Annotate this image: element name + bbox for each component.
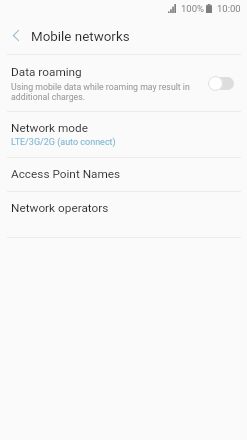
- staticText: Data roaming: [11, 65, 82, 79]
- button[interactable]: Access Point Names: [0, 158, 247, 191]
- button[interactable]: Network mode: [0, 112, 247, 157]
- staticText: Access Point Names: [11, 167, 121, 181]
- staticText: 100%: [181, 3, 204, 14]
- button[interactable]: Data roaming off: [208, 76, 233, 91]
- staticText: Network operators: [11, 201, 109, 215]
- staticText: LTE/3G/2G (auto connect): [11, 137, 116, 148]
- staticText: Mobile networks: [31, 29, 130, 45]
- button[interactable]: Network operators: [0, 192, 247, 225]
- button[interactable]: Data roaming: [0, 55, 247, 111]
- staticText: 10:00: [217, 3, 241, 14]
- staticText: Network mode: [11, 121, 89, 135]
- staticText: Using mobile data while roaming may resu…: [11, 82, 190, 102]
- button[interactable]: Navigate up: [0, 19, 31, 53]
